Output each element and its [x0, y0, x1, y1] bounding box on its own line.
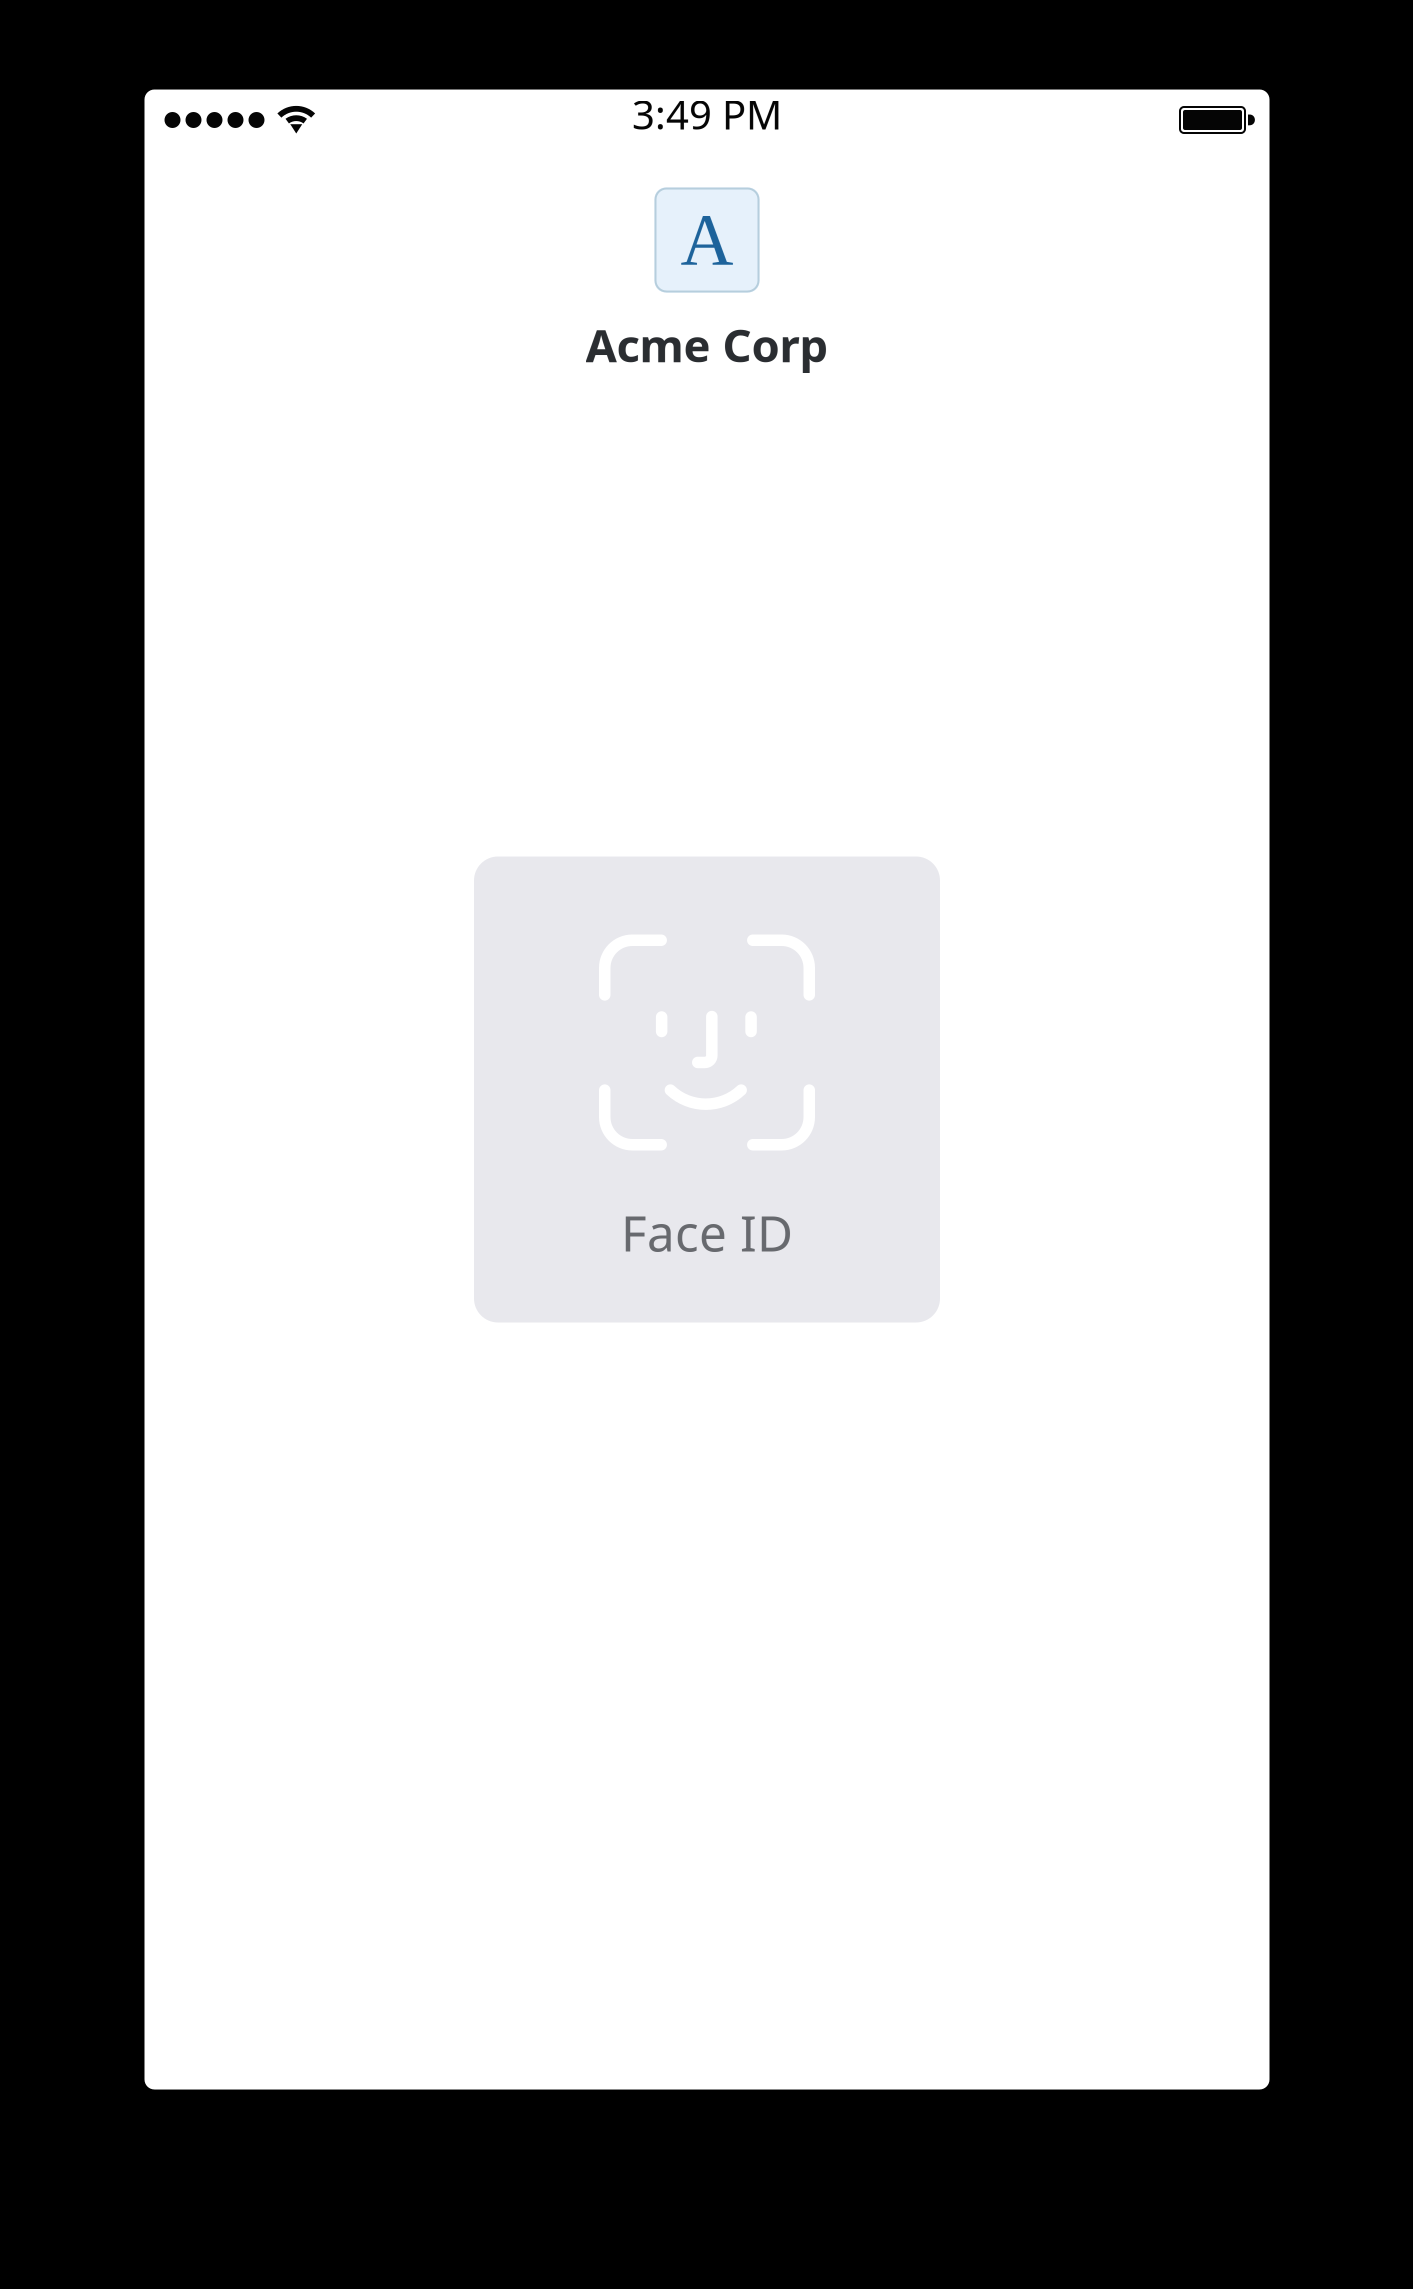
staticText: Face ID [621, 1199, 793, 1265]
staticText: 3:49 PM [632, 87, 782, 140]
button[interactable]: Unlock with Face ID [474, 856, 940, 1322]
staticText: Acme Corp [585, 314, 828, 375]
staticText: A [680, 199, 733, 281]
